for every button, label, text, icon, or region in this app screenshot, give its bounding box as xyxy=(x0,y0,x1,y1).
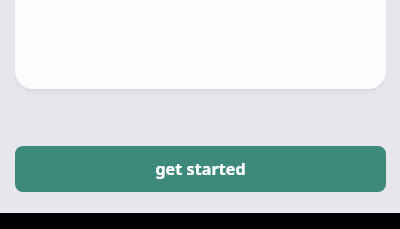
button[interactable]: get started xyxy=(15,146,386,192)
staticText: get started xyxy=(155,158,246,180)
